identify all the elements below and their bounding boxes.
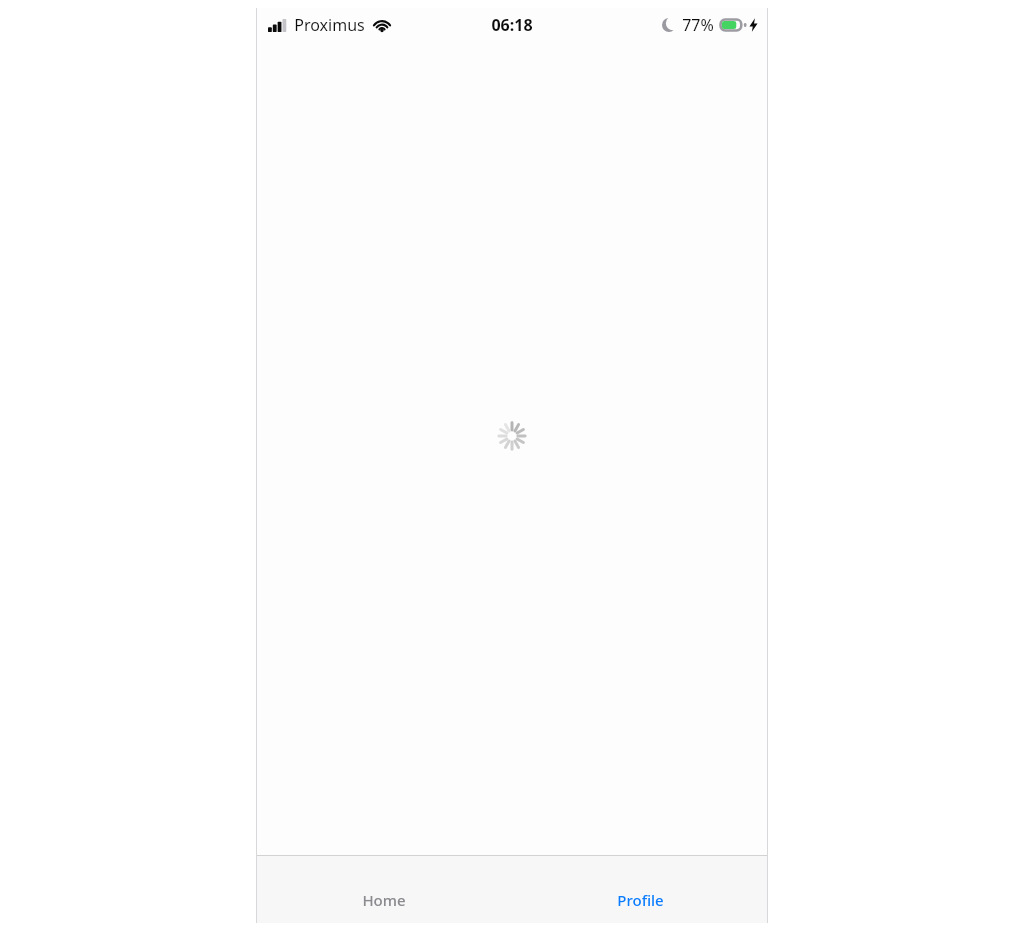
staticText: 77% <box>682 14 714 36</box>
other: Charging <box>749 18 758 32</box>
staticText: Proximus <box>294 14 365 36</box>
staticText: Profile <box>617 890 664 910</box>
other: Battery 77 percent <box>719 18 747 32</box>
staticText: Home <box>362 890 406 910</box>
other: Loading <box>498 422 526 450</box>
staticText: 06:18 <box>491 14 533 36</box>
other: Wi-Fi <box>373 18 391 32</box>
other: Cellular signal <box>268 19 287 32</box>
button[interactable]: Home <box>256 856 512 923</box>
other: Do Not Disturb <box>662 18 676 32</box>
button[interactable]: Profile <box>512 856 768 923</box>
